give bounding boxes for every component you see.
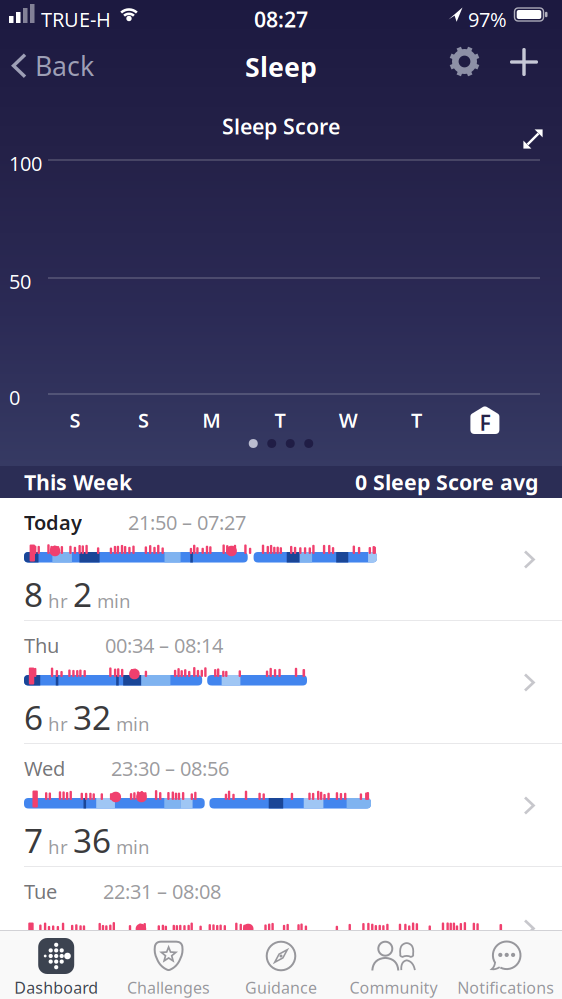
button[interactable] <box>449 46 480 77</box>
button[interactable]: Challenges <box>112 930 225 999</box>
button[interactable]: Notifications <box>450 930 562 999</box>
staticText: Notifications <box>457 977 554 998</box>
button[interactable]: Dashboard <box>0 930 112 999</box>
staticText: 0 Sleep Score avg <box>355 468 538 496</box>
staticText: 97% <box>468 6 507 33</box>
button[interactable]: Tue <box>0 867 562 990</box>
button[interactable]: Today <box>0 498 562 621</box>
button[interactable]: F <box>451 405 519 434</box>
button[interactable]: Guidance <box>225 930 337 999</box>
staticText: 0 <box>9 384 20 411</box>
staticText: Sleep Score <box>222 112 340 140</box>
staticText: Sleep <box>245 49 317 84</box>
staticText: hr <box>48 588 68 613</box>
staticText: F <box>479 408 490 437</box>
staticText: 2 <box>73 572 92 616</box>
staticText: Dashboard <box>14 977 98 998</box>
staticText: Guidance <box>245 977 317 998</box>
staticText: 8 <box>24 572 43 616</box>
staticText: S <box>138 407 149 433</box>
staticText: Today <box>24 509 82 536</box>
staticText: 32 <box>73 695 111 739</box>
button[interactable]: Community <box>337 930 450 999</box>
staticText: S <box>70 407 81 433</box>
staticText: 50 <box>9 268 31 295</box>
button[interactable]: Back <box>11 48 94 83</box>
staticText: 7 <box>24 818 43 862</box>
staticText: Wed <box>24 755 65 782</box>
staticText: W <box>339 407 358 433</box>
staticText: 21:50 – 07:27 <box>128 509 246 536</box>
staticText: 8 <box>24 941 43 985</box>
staticText: T <box>274 407 285 433</box>
staticText: hr <box>48 957 68 982</box>
staticText: hr <box>48 711 68 736</box>
staticText: Thu <box>24 632 59 659</box>
staticText: Tue <box>24 878 57 905</box>
staticText: 23:30 – 08:56 <box>111 755 229 782</box>
button[interactable]: Wed <box>0 744 562 867</box>
staticText: 00:34 – 08:14 <box>105 632 223 659</box>
staticText: 0 <box>73 941 92 985</box>
staticText: 36 <box>73 818 111 862</box>
button[interactable]: Thu <box>0 621 562 744</box>
staticText: min <box>116 834 150 859</box>
staticText: min <box>116 711 150 736</box>
staticText: 6 <box>24 695 43 739</box>
staticText: T <box>411 407 422 433</box>
button[interactable] <box>521 127 545 151</box>
button[interactable] <box>510 48 538 76</box>
staticText: 22:31 – 08:08 <box>103 878 221 905</box>
staticText: M <box>202 407 221 433</box>
staticText: 100 <box>9 150 42 177</box>
staticText: min <box>97 588 131 613</box>
staticText: 08:27 <box>254 5 308 33</box>
staticText: Community <box>349 977 437 998</box>
staticText: Back <box>35 48 94 83</box>
staticText: TRUE-H <box>41 6 111 33</box>
staticText: hr <box>48 834 68 859</box>
staticText: Challenges <box>127 977 210 998</box>
staticText: This Week <box>24 468 132 496</box>
